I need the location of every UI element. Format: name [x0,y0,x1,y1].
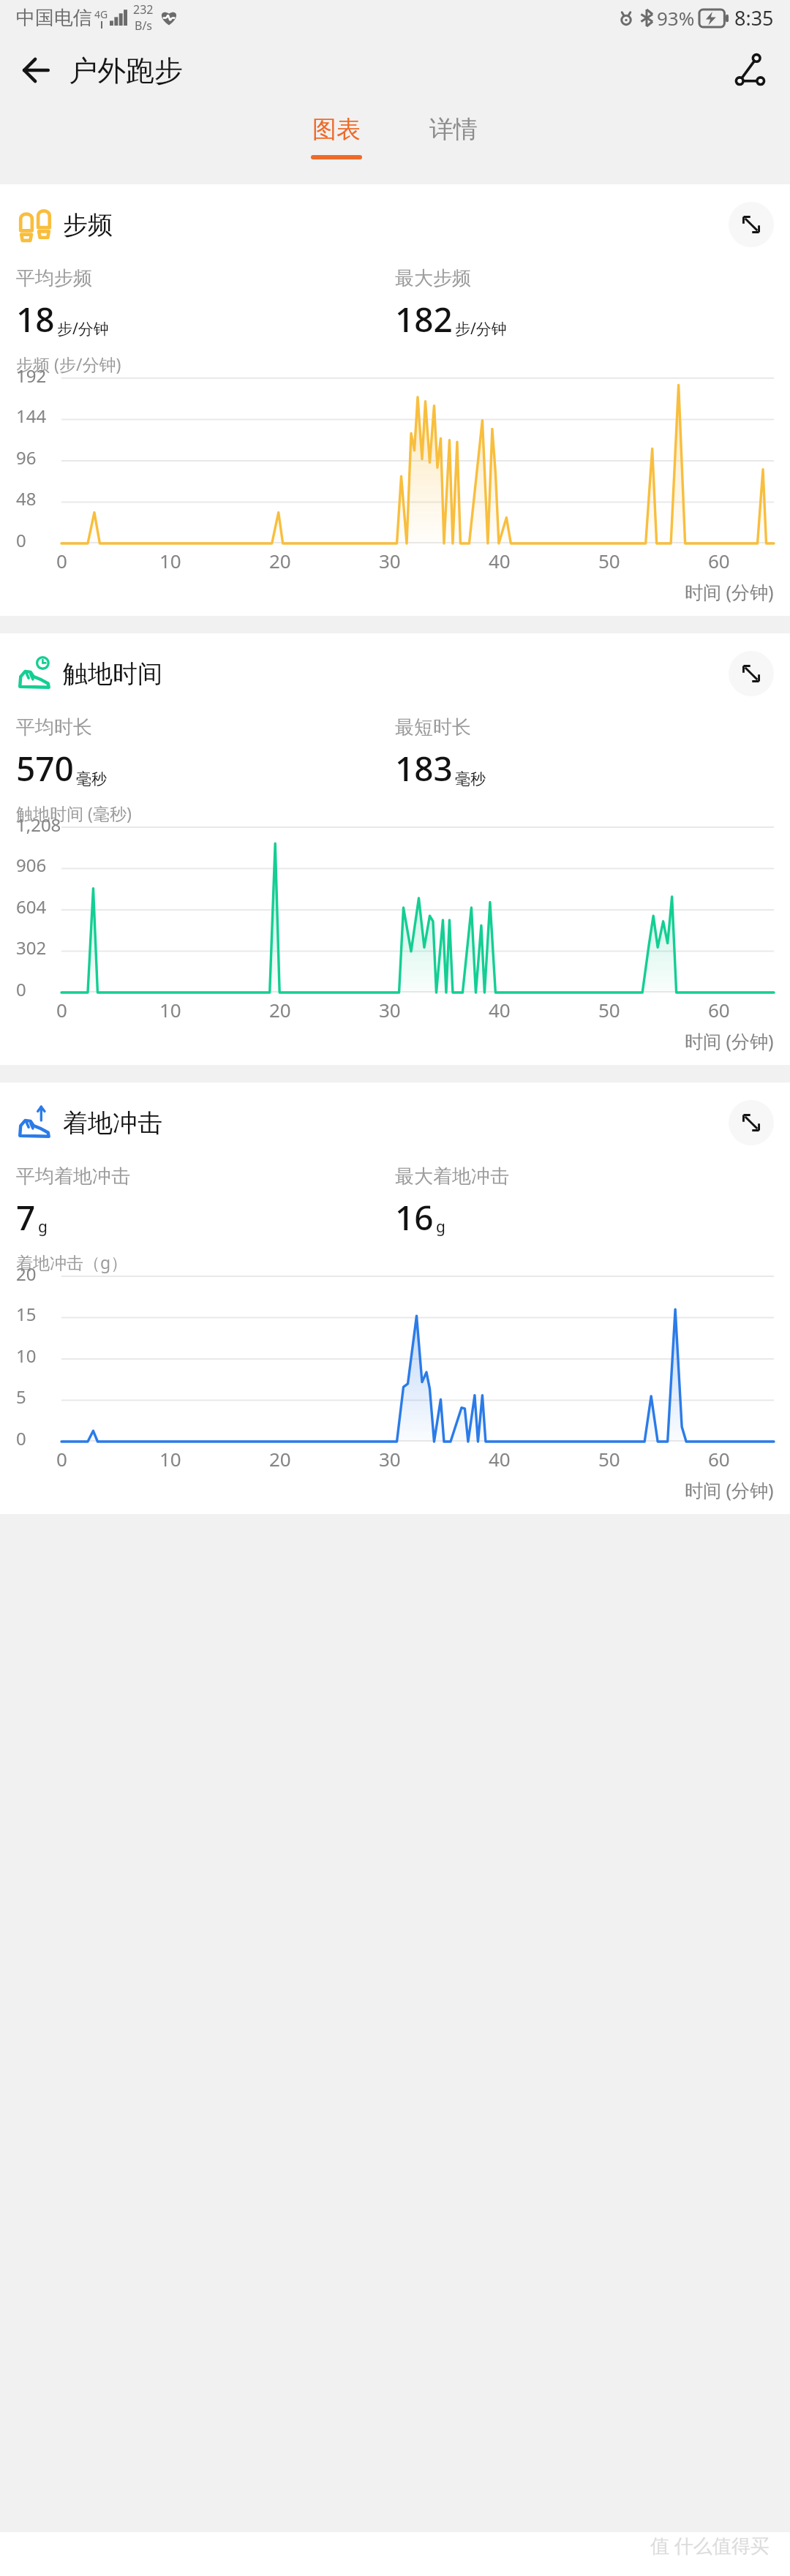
staticText: 时间 (分钟) [685,579,774,604]
staticText: 0 [56,997,67,1023]
staticText: 平均时长 [16,715,92,739]
staticText: 步/分钟 [455,318,507,339]
staticText: 50 [598,548,620,573]
staticText: 最大步频 [395,266,471,290]
staticText: 7 [16,1194,36,1240]
staticText: 20 [269,997,291,1023]
staticText: B/s [135,18,153,34]
staticText: 10 [159,997,181,1023]
staticText: 着地冲击（g） [16,1251,128,1273]
staticText: 毫秒 [455,769,486,788]
staticText: 步频 [63,209,113,241]
staticText: 60 [708,997,730,1023]
staticText: 10 [159,548,181,573]
staticText: 4G [94,7,108,21]
staticText: 192 [16,364,47,388]
staticText: 步/分钟 [57,318,109,339]
staticText: 30 [379,548,401,573]
staticText: 最大着地冲击 [395,1164,509,1189]
staticText: 时间 (分钟) [685,1028,774,1053]
staticText: 最短时长 [395,715,471,739]
staticText: 5 [16,1385,26,1409]
staticText: 48 [16,486,37,511]
staticText: 0 [56,1446,67,1472]
button[interactable]: 步频 [0,184,790,616]
button[interactable]: Expand chart [729,651,774,696]
staticText: 0 [16,977,26,1001]
staticText: 50 [598,1446,620,1472]
staticText: 40 [489,548,511,573]
staticText: 302 [16,935,47,960]
staticText: 40 [489,997,511,1023]
staticText: 60 [708,1446,730,1472]
staticText: 0 [56,548,67,573]
staticText: 144 [16,404,47,428]
staticText: 18 [16,296,55,342]
staticText: 40 [489,1446,511,1472]
staticText: 步频 (步/分钟) [16,353,121,375]
staticText: 图表 [312,114,361,145]
button[interactable]: 触地时间 [0,633,790,1065]
staticText: 182 [395,296,453,342]
staticText: 1,208 [16,813,61,837]
staticText: 触地时间 (毫秒) [16,802,132,824]
button[interactable]: Expand chart [729,1100,774,1145]
staticText: 604 [16,895,47,919]
staticText: 16 [395,1194,434,1240]
staticText: 0 [16,1426,26,1450]
button[interactable]: 图表 [285,114,388,159]
button[interactable]: Back [12,46,60,94]
staticText: 15 [16,1302,37,1326]
staticText: 平均着地冲击 [16,1164,130,1189]
staticText: 触地时间 [63,658,162,690]
staticText: g [38,1216,48,1238]
staticText: 10 [159,1446,181,1472]
button[interactable]: Expand chart [729,202,774,247]
staticText: 93% [657,5,695,31]
button[interactable]: 着地冲击 [0,1082,790,1514]
staticText: 详情 [429,114,478,145]
staticText: 值 什么值得买 [650,2532,770,2558]
button[interactable]: Share [724,45,775,96]
staticText: 50 [598,997,620,1023]
staticText: 20 [269,1446,291,1472]
staticText: 20 [269,548,291,573]
staticText: 570 [16,745,74,791]
staticText: 232 [133,1,154,18]
staticText: 时间 (分钟) [685,1477,774,1502]
staticText: 96 [16,445,37,470]
staticText: 户外跑步 [69,53,183,88]
staticText: 着地冲击 [63,1107,162,1139]
staticText: 30 [379,1446,401,1472]
staticText: 中国电信 [16,6,92,30]
staticText: 60 [708,548,730,573]
staticText: g [436,1216,445,1238]
staticText: 毫秒 [76,769,107,788]
staticText: 8:35 [734,4,774,31]
staticText: 10 [16,1344,37,1368]
staticText: 30 [379,997,401,1023]
staticText: 906 [16,853,47,877]
staticText: 20 [16,1262,37,1286]
button[interactable]: 详情 [402,114,505,159]
staticText: 平均步频 [16,266,92,290]
staticText: 183 [395,745,453,791]
staticText: 0 [16,528,26,552]
